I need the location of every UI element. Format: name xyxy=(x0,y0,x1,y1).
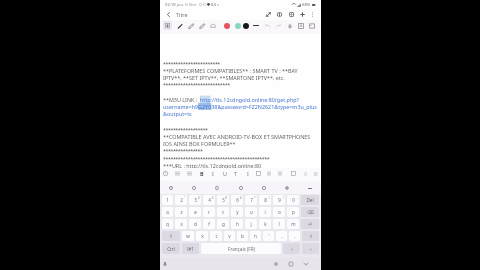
button[interactable]: 3 xyxy=(189,195,201,205)
button[interactable]: q xyxy=(162,219,173,229)
button[interactable]: Pen settings xyxy=(162,20,173,31)
button[interactable]: , xyxy=(276,231,287,241)
button[interactable]: z xyxy=(175,207,187,217)
button[interactable]: n xyxy=(250,231,261,241)
button[interactable]: Image xyxy=(306,20,317,31)
button[interactable]: m xyxy=(287,219,299,229)
button[interactable]: Teal xyxy=(232,20,243,31)
button[interactable]: o xyxy=(273,207,285,217)
button[interactable]: Collapse keyboard xyxy=(306,184,314,192)
button[interactable]: k xyxy=(259,219,271,229)
button[interactable]: a xyxy=(162,207,173,217)
button[interactable]: 8 xyxy=(259,195,271,205)
button[interactable]: Align right xyxy=(184,168,195,179)
staticText: Ctrl xyxy=(167,246,175,252)
button[interactable]: Format T xyxy=(230,168,241,179)
button[interactable]: List xyxy=(264,168,275,179)
button[interactable]: v xyxy=(224,231,235,241)
button[interactable]: Microphone xyxy=(159,258,170,269)
staticText: ***URL : http://tls.12cdngold.online:80 xyxy=(163,162,262,168)
button[interactable]: Format I xyxy=(207,168,218,179)
button[interactable]: b xyxy=(237,231,248,241)
button[interactable]: › xyxy=(302,243,319,254)
button[interactable]: Redo xyxy=(272,20,283,31)
staticText: t xyxy=(222,209,224,215)
button[interactable]: 4 xyxy=(203,195,215,205)
button[interactable]: Attach xyxy=(300,168,311,179)
button[interactable]: Back xyxy=(163,9,174,20)
button[interactable]: 9 xyxy=(273,195,285,205)
button[interactable]: g xyxy=(217,219,229,229)
button[interactable]: f xyxy=(203,219,215,229)
button[interactable]: Save xyxy=(286,9,297,20)
button[interactable]: Expand xyxy=(263,9,274,20)
button[interactable]: !#1 xyxy=(182,243,199,254)
button[interactable]: Black xyxy=(240,20,251,31)
button[interactable]: w xyxy=(182,231,194,241)
button[interactable]: Align left xyxy=(172,168,183,179)
button[interactable]: Titre xyxy=(176,9,188,20)
button[interactable]: u xyxy=(245,207,257,217)
button[interactable]: Settings xyxy=(283,184,291,192)
button[interactable]: Highlighter xyxy=(185,20,196,31)
button[interactable]: Back xyxy=(300,258,311,269)
button[interactable]: Stickers xyxy=(190,184,198,192)
button[interactable]: Text box xyxy=(295,20,306,31)
button[interactable]: Clipboard xyxy=(213,184,221,192)
button[interactable]: Split view xyxy=(274,9,285,20)
button[interactable]: Recent apps xyxy=(270,258,281,269)
button[interactable]: j xyxy=(245,219,257,229)
button[interactable]: Pen xyxy=(174,20,185,31)
button[interactable]: Français (FR) xyxy=(201,243,281,254)
button[interactable]: Format U xyxy=(219,168,230,179)
button[interactable]: e xyxy=(189,207,201,217)
staticText: x xyxy=(201,233,204,239)
button[interactable]: p xyxy=(287,207,299,217)
button[interactable]: Emoji xyxy=(167,184,175,192)
button[interactable]: Eyedropper xyxy=(284,20,295,31)
button[interactable]: . xyxy=(289,231,300,241)
button[interactable]: Shape xyxy=(207,20,218,31)
button[interactable]: Eraser xyxy=(196,20,207,31)
button[interactable]: 1 xyxy=(162,195,173,205)
staticText: 6 xyxy=(236,197,239,203)
button[interactable]: Stroke width xyxy=(250,20,261,31)
button[interactable]: 2 xyxy=(175,195,187,205)
button[interactable]: Ctrl xyxy=(162,243,180,254)
button[interactable]: Paragraph xyxy=(253,168,264,179)
button[interactable]: Voice input xyxy=(237,184,245,192)
button[interactable]: ‹ xyxy=(283,243,300,254)
button[interactable]: l xyxy=(273,219,285,229)
button[interactable]: ⇧ xyxy=(302,231,319,241)
button[interactable]: Home xyxy=(285,258,296,269)
button[interactable]: Insert xyxy=(288,168,299,179)
button[interactable]: r xyxy=(203,207,215,217)
button[interactable]: Del xyxy=(301,195,319,205)
button[interactable]: Format I xyxy=(242,168,253,179)
button[interactable]: Handwriting xyxy=(260,184,268,192)
button[interactable]: Undo xyxy=(160,168,171,179)
button[interactable]: ⏎ xyxy=(301,219,319,229)
button[interactable]: Checklist xyxy=(275,168,286,179)
button[interactable]: ⇧ xyxy=(162,231,180,241)
button[interactable]: t xyxy=(217,207,229,217)
button[interactable]: 6 xyxy=(231,195,243,205)
button[interactable]: 7 xyxy=(245,195,257,205)
button[interactable]: d xyxy=(189,219,201,229)
button[interactable]: y xyxy=(231,207,243,217)
button[interactable]: More options xyxy=(307,9,318,20)
button[interactable]: More xyxy=(310,168,321,179)
button[interactable]: ' xyxy=(263,231,274,241)
button[interactable]: Add xyxy=(297,9,308,20)
button[interactable]: Format B xyxy=(196,168,207,179)
button[interactable]: s xyxy=(175,219,187,229)
button[interactable]: c xyxy=(210,231,222,241)
button[interactable]: h xyxy=(231,219,243,229)
button[interactable]: 5 xyxy=(217,195,229,205)
button[interactable]: 0 xyxy=(287,195,299,205)
button[interactable]: i xyxy=(259,207,271,217)
button[interactable]: x xyxy=(196,231,208,241)
button[interactable]: Undo xyxy=(262,20,273,31)
button[interactable]: ⌫ xyxy=(301,207,319,217)
button[interactable]: Red xyxy=(221,20,232,31)
